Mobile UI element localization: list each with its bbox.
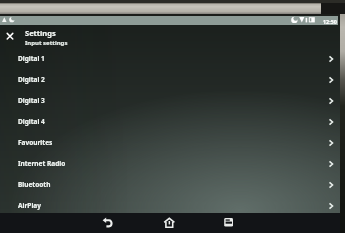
staticText: Input settings [25, 39, 68, 47]
button[interactable]: Recent apps [222, 216, 238, 232]
staticText: Digital 4 [18, 117, 45, 126]
button[interactable]: Digital 2 [0, 69, 341, 90]
staticText: Bluetooth [18, 180, 51, 189]
button[interactable]: Digital 1 [0, 48, 341, 69]
staticText: AirPlay [18, 201, 41, 210]
button[interactable]: Digital 4 [0, 111, 341, 132]
staticText: Internet Radio [18, 159, 66, 168]
staticText: Digital 2 [18, 75, 45, 84]
button[interactable]: Back [100, 215, 116, 231]
button[interactable]: Digital 3 [0, 90, 341, 111]
staticText: Favourites [18, 138, 53, 147]
button[interactable]: Internet Radio [0, 153, 341, 174]
button[interactable]: Home [161, 216, 177, 232]
button[interactable]: Bluetooth [0, 174, 341, 195]
button[interactable]: AirPlay [0, 195, 341, 216]
staticText: Settings [25, 28, 56, 38]
staticText: Digital 1 [18, 54, 45, 63]
button[interactable]: Favourites [0, 132, 341, 153]
staticText: Digital 3 [18, 96, 45, 105]
staticText: 12:50 [323, 18, 337, 25]
button[interactable]: Close [4, 30, 16, 42]
